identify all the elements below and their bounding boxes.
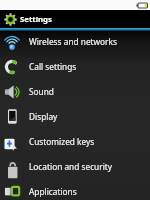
button[interactable]: Call settings bbox=[0, 54, 150, 79]
staticText: Location and security bbox=[29, 161, 113, 172]
staticText: Settings bbox=[20, 14, 52, 25]
button[interactable]: Customized keys bbox=[0, 129, 150, 154]
staticText: Sound bbox=[29, 86, 54, 97]
staticText: Display bbox=[29, 111, 58, 122]
button[interactable]: Wireless and networks bbox=[0, 29, 150, 54]
button[interactable]: Applications bbox=[0, 179, 150, 200]
button[interactable]: Location and security bbox=[0, 154, 150, 179]
staticText: Wireless and networks bbox=[29, 36, 117, 47]
staticText: Customized keys bbox=[29, 136, 95, 147]
staticText: Applications bbox=[29, 186, 77, 197]
button[interactable]: Display bbox=[0, 104, 150, 129]
button[interactable]: Sound bbox=[0, 79, 150, 104]
staticText: Call settings bbox=[29, 61, 77, 72]
